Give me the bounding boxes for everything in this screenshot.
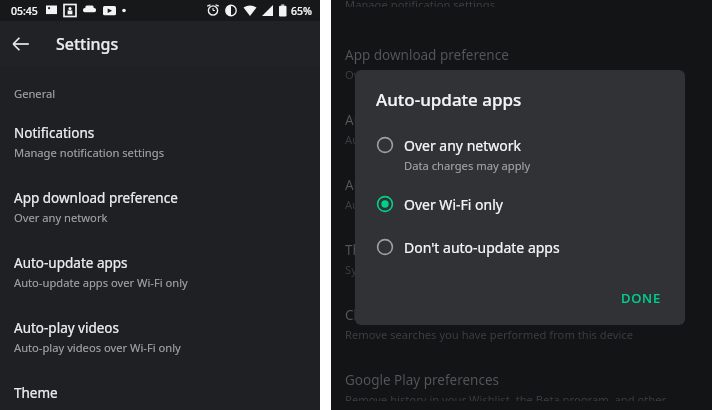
staticText: Auto-update apps (376, 88, 522, 111)
staticText: Auto-update apps (14, 254, 128, 272)
staticText: Theme (345, 241, 389, 259)
staticText: App download preference (345, 46, 509, 64)
button[interactable]: Theme (0, 375, 320, 410)
staticText: App download preference (14, 189, 178, 207)
staticText: Auto-play videos over Wi-Fi only (14, 340, 181, 355)
button[interactable]: Google Play preferences (331, 362, 712, 410)
staticText: Auto-update apps (345, 111, 459, 129)
staticText: Remove searches you have performed from … (345, 327, 634, 342)
staticText: Auto-play videos (14, 319, 120, 337)
staticText: Clear local search history (345, 306, 504, 324)
staticText: Auto-play videos over Wi-Fi only (345, 197, 512, 212)
staticText: Theme (14, 384, 58, 401)
staticText: Remove history in your Wishlist, the Bet… (345, 392, 667, 401)
staticText: Auto-update apps over Wi-Fi only (345, 132, 519, 147)
button[interactable]: Over Wi-Fi only (355, 187, 685, 221)
staticText: Data charges may apply (404, 158, 531, 173)
staticText: Don't auto-update apps (404, 238, 560, 257)
button[interactable]: App download preference (0, 180, 320, 234)
staticText: Notifications (14, 124, 95, 142)
staticText: General (14, 86, 56, 101)
button[interactable]: Over any network (355, 128, 685, 180)
staticText: Auto-update apps over Wi-Fi only (14, 275, 188, 290)
button[interactable]: Back (8, 31, 34, 57)
staticText: Settings (56, 33, 119, 55)
button[interactable]: Don't auto-update apps (355, 230, 685, 264)
staticText: Manage notification settings (345, 0, 496, 7)
staticText: DONE (621, 289, 661, 307)
button[interactable]: App download preference (331, 37, 712, 91)
button[interactable]: Notifications (0, 115, 320, 169)
staticText: Over any network (14, 210, 108, 225)
button[interactable]: Auto-update apps (331, 102, 712, 156)
staticText: Over any network (345, 67, 439, 82)
staticText: System default (345, 262, 424, 277)
button[interactable]: Auto-play videos (331, 167, 712, 221)
staticText: 05:45 (11, 4, 38, 18)
button[interactable]: Auto-play videos (0, 310, 320, 364)
button[interactable]: Theme (331, 232, 712, 286)
staticText: Google Play preferences (345, 371, 499, 389)
button[interactable]: Auto-update apps (0, 245, 320, 299)
staticText: 65% (291, 4, 312, 18)
button[interactable]: DONE (615, 285, 667, 311)
staticText: Manage notification settings (14, 145, 165, 160)
staticText: Over any network (404, 136, 521, 155)
staticText: Auto-play videos (345, 176, 451, 194)
staticText: Over Wi-Fi only (404, 195, 503, 214)
button[interactable]: Clear local search history (331, 297, 712, 351)
